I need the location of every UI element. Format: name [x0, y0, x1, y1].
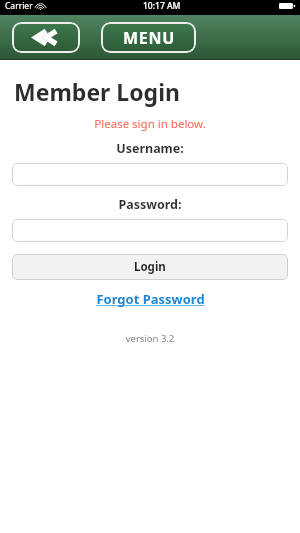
staticText: Member Login	[14, 76, 180, 107]
button[interactable]: Login	[12, 254, 288, 280]
button[interactable]: Back	[12, 22, 80, 53]
button[interactable]: Username input	[12, 163, 288, 186]
staticText: Password:	[0, 196, 300, 213]
staticText: Carrier	[5, 0, 33, 12]
staticText: Username:	[0, 140, 300, 157]
staticText: MENU	[123, 27, 175, 49]
staticText: Login	[134, 259, 166, 275]
button[interactable]: MENU	[101, 22, 196, 53]
staticText: 10:17 AM	[143, 0, 181, 12]
staticText: Please sign in below.	[0, 116, 300, 132]
button[interactable]: Forgot Password	[0, 290, 300, 308]
staticText: Forgot Password	[96, 290, 205, 308]
staticText: version 3.2	[0, 332, 300, 345]
button[interactable]: Password input	[12, 219, 288, 242]
